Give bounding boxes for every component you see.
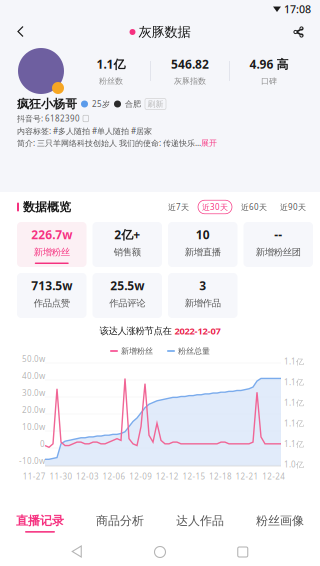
staticText: 该达人涨粉节点在 — [99, 325, 171, 337]
staticText: 17:08 — [284, 2, 311, 16]
staticText: 11-27 — [23, 471, 46, 482]
button[interactable]: 近30天 — [198, 200, 232, 214]
staticText: 1.1亿 — [284, 418, 304, 429]
staticText: 10.0w — [22, 422, 45, 432]
staticText: 11-30 — [49, 471, 72, 482]
button[interactable]: 10 — [168, 222, 237, 267]
staticText: 疯狂小杨哥 — [17, 97, 77, 111]
button[interactable]: 近7天 — [164, 200, 193, 214]
staticText: 近30天 — [202, 202, 228, 212]
staticText: 商品分析 — [96, 513, 144, 528]
staticText: 销售额 — [114, 246, 141, 258]
staticText: 12-18 — [209, 471, 232, 482]
button[interactable]: 近60天 — [237, 200, 271, 214]
staticText: 直播记录 — [16, 513, 64, 528]
staticText: -- — [274, 227, 282, 242]
staticText: 1.1亿 — [284, 356, 304, 367]
button[interactable]: 3 — [168, 273, 237, 318]
button[interactable]: 达人作品 — [160, 513, 240, 533]
staticText: 展开 — [201, 138, 217, 148]
button[interactable]: 25.5w — [92, 273, 162, 318]
staticText: 新增粉丝 — [121, 346, 153, 356]
staticText: 新增粉丝团 — [256, 246, 301, 258]
button[interactable]: Back — [72, 546, 82, 558]
staticText: 近60天 — [241, 202, 267, 212]
button[interactable]: Home — [154, 546, 165, 557]
staticText: 近90天 — [280, 202, 306, 212]
staticText: 25.5w — [110, 278, 144, 293]
staticText: 3 — [199, 278, 206, 293]
staticText: 口碑 — [261, 76, 277, 86]
staticText: 简介: 三只羊网络科技创始人 我们的使命: 传递快乐... — [17, 138, 201, 148]
button[interactable]: -- — [243, 222, 313, 267]
staticText: 近7天 — [168, 202, 189, 212]
staticText: 12-03 — [76, 471, 99, 482]
button[interactable]: 粉丝画像 — [240, 513, 320, 533]
staticText: 0 — [40, 439, 45, 449]
staticText: 新增粉丝 — [34, 246, 70, 258]
staticText: 12-12 — [156, 471, 179, 482]
staticText: 12-24 — [262, 471, 285, 482]
staticText: 合肥 — [125, 99, 141, 109]
staticText: 新增直播 — [185, 246, 221, 258]
staticText: 50.0w — [22, 354, 45, 364]
staticText: 25岁 — [92, 99, 110, 109]
staticText: 12-09 — [129, 471, 152, 482]
staticText: 灰豚数据 — [138, 24, 190, 40]
staticText: 12-21 — [236, 471, 259, 482]
staticText: 粉丝数 — [99, 76, 123, 86]
staticText: 数据概览 — [23, 200, 71, 214]
staticText: 713.5w — [31, 278, 72, 293]
staticText: 12-06 — [103, 471, 126, 482]
staticText: 2亿+ — [114, 227, 140, 242]
staticText: 4.96 高 — [249, 56, 288, 72]
button[interactable]: Back — [6, 19, 36, 45]
staticText: 新增作品 — [185, 297, 221, 309]
staticText: 2022-12-07 — [174, 325, 220, 337]
button[interactable]: Share — [284, 19, 314, 45]
button[interactable]: 2亿+ — [92, 222, 162, 267]
button[interactable]: 商品分析 — [80, 513, 160, 533]
button[interactable]: Recents — [238, 547, 248, 557]
staticText: 灰豚指数 — [174, 76, 206, 86]
staticText: 作品评论 — [109, 297, 145, 309]
staticText: 1.0亿 — [284, 459, 304, 470]
button[interactable]: 713.5w — [17, 273, 86, 318]
staticText: 10 — [196, 227, 210, 242]
staticText: 内容标签: #多人随拍 #单人随拍 #居家 — [17, 126, 152, 136]
staticText: 1.1亿 — [96, 56, 125, 72]
staticText: 546.82 — [171, 56, 209, 72]
staticText: 40.0w — [22, 371, 45, 381]
button[interactable]: 直播记录 — [0, 513, 80, 533]
staticText: 20.0w — [22, 405, 45, 415]
button[interactable]: 近90天 — [276, 200, 310, 214]
staticText: 1.1亿 — [284, 439, 304, 449]
button[interactable]: 226.7w — [17, 222, 86, 267]
staticText: 226.7w — [31, 227, 72, 242]
staticText: 抖音号: 6182390 — [17, 113, 80, 124]
staticText: 粉丝总量 — [178, 346, 210, 356]
staticText: 刷新 — [147, 99, 163, 109]
staticText: 1.1亿 — [284, 377, 304, 387]
staticText: 30.0w — [22, 388, 45, 398]
staticText: 作品点赞 — [34, 297, 70, 309]
staticText: 1.1亿 — [284, 397, 304, 408]
staticText: 达人作品 — [176, 513, 224, 528]
staticText: 12-15 — [182, 471, 205, 482]
staticText: 粉丝画像 — [256, 513, 304, 528]
staticText: -10.0w — [19, 456, 45, 466]
